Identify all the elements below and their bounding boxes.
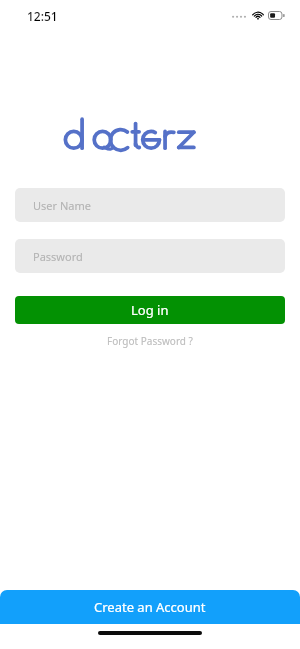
button[interactable]: Create an Account: [0, 590, 300, 624]
staticText: Password: [33, 249, 83, 264]
other: Docterz logo: [57, 113, 243, 157]
staticText: 12:51: [27, 8, 58, 24]
button[interactable]: Log in: [15, 296, 285, 324]
button[interactable]: Forgot Password ?: [15, 332, 285, 350]
button[interactable]: User Name: [15, 188, 285, 222]
staticText: Create an Account: [94, 598, 206, 616]
staticText: User Name: [33, 198, 91, 213]
staticText: Forgot Password ?: [107, 334, 193, 348]
button[interactable]: Password: [15, 239, 285, 273]
staticText: Log in: [131, 301, 169, 319]
